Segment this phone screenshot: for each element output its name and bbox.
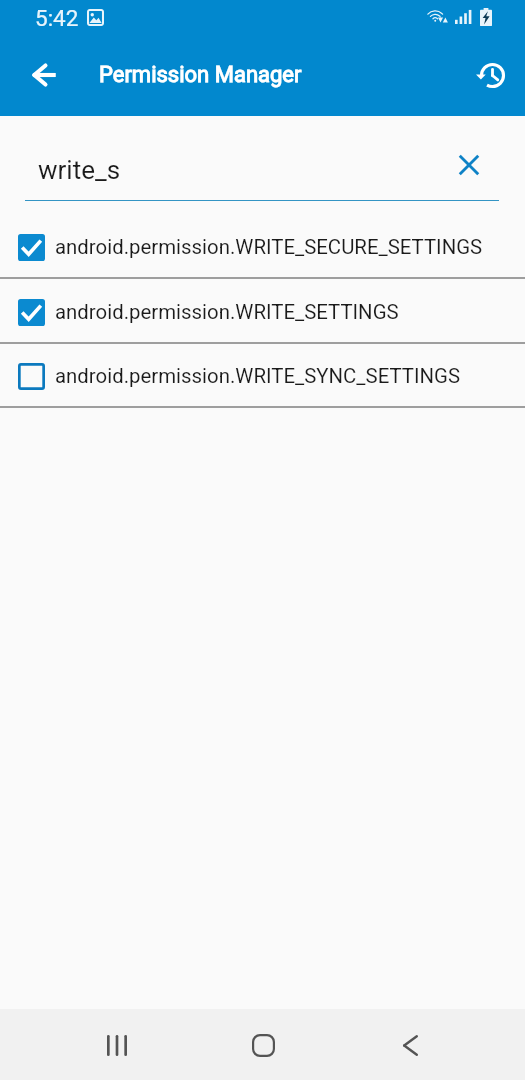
button[interactable]: Back [366,1009,455,1080]
button[interactable]: Recent apps [72,1009,161,1080]
button[interactable]: android.permission.WRITE_SECURE_SETTINGS [0,215,525,279]
button[interactable]: History [472,57,508,93]
staticText: android.permission.WRITE_SECURE_SETTINGS [55,235,483,259]
button[interactable]: Home [219,1009,308,1080]
button[interactable]: Back [26,57,62,93]
staticText: android.permission.WRITE_SYNC_SETTINGS [55,364,461,388]
button[interactable]: Clear search [453,149,485,181]
button[interactable]: android.permission.WRITE_SETTINGS [0,280,525,344]
button[interactable]: android.permission.WRITE_SYNC_SETTINGS [0,344,525,408]
staticText: android.permission.WRITE_SETTINGS [55,300,399,324]
staticText: Permission Manager [99,62,302,88]
staticText: 5:42 [35,5,79,31]
staticText: write_s [38,155,121,185]
